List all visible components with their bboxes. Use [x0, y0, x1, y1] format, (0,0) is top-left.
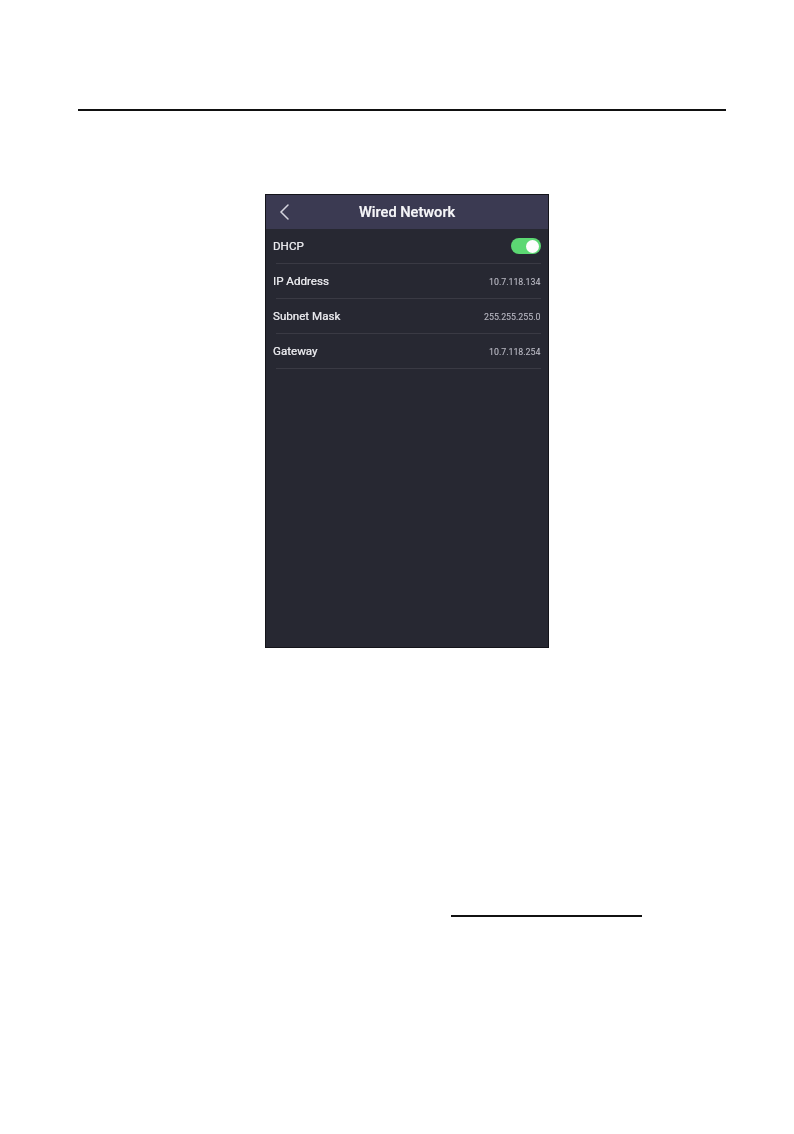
- button[interactable]: Subnet Mask: [265, 299, 549, 333]
- button[interactable]: IP Address: [265, 264, 549, 298]
- staticText: IP Address: [273, 274, 329, 288]
- staticText: Subnet Mask: [273, 309, 341, 323]
- button[interactable]: DHCP enabled: [511, 238, 541, 254]
- button[interactable]: Back: [272, 196, 296, 228]
- staticText: Wired Network: [359, 203, 456, 220]
- staticText: 10.7.118.254: [489, 347, 541, 357]
- button[interactable]: Gateway: [265, 334, 549, 368]
- button[interactable]: DHCP: [265, 229, 549, 263]
- staticText: 255.255.255.0: [484, 312, 541, 322]
- staticText: Gateway: [273, 344, 318, 358]
- staticText: 10.7.118.134: [489, 277, 541, 287]
- staticText: DHCP: [273, 239, 304, 253]
